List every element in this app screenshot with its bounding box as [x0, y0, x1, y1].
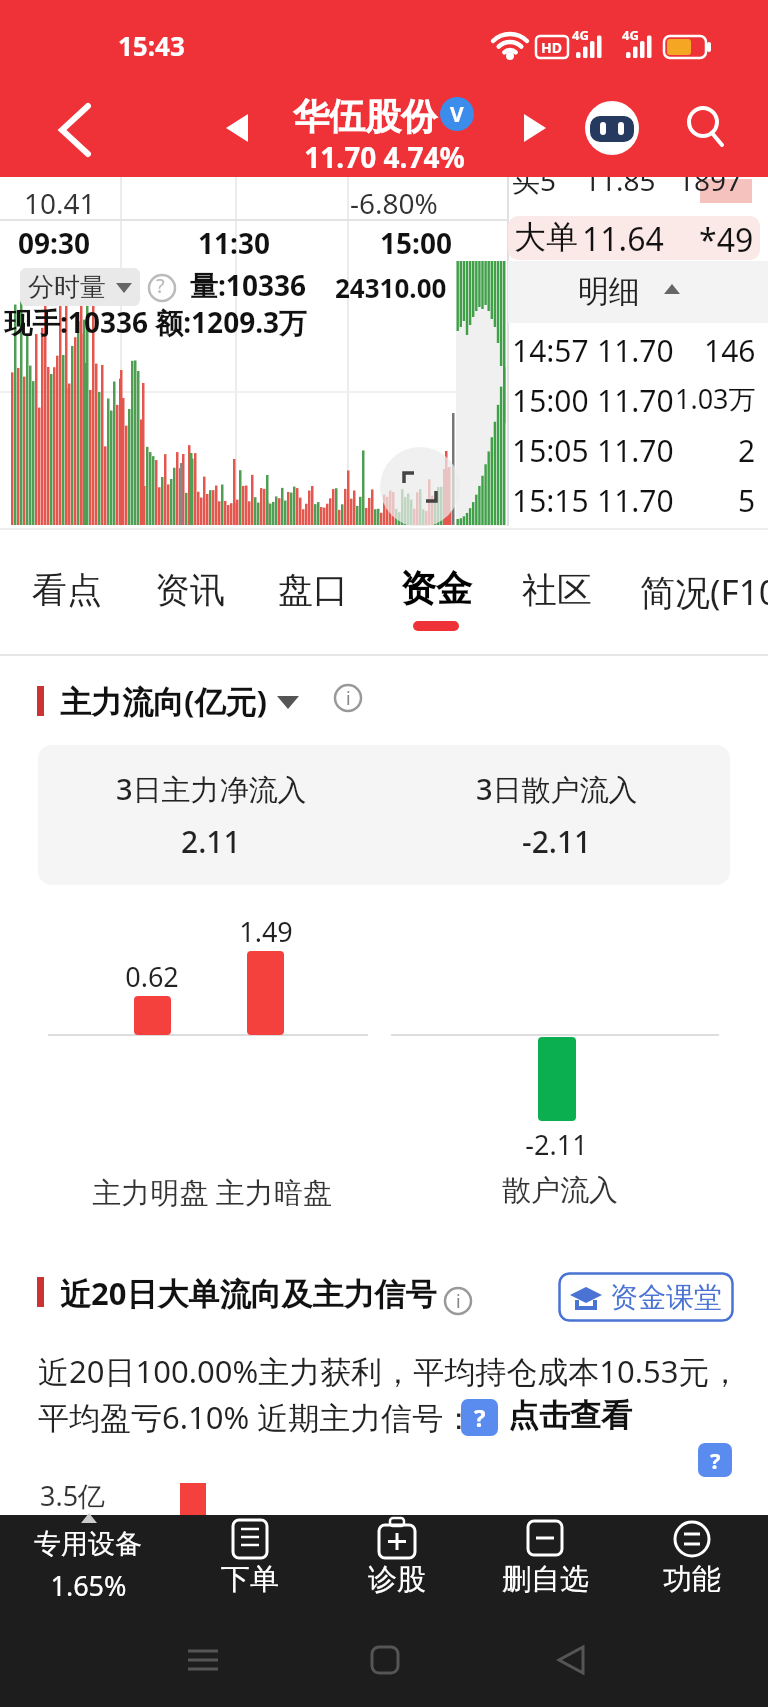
- staticText: 11.70: [597, 330, 674, 371]
- staticText: 平均盈亏6.10% 近期主力信号：: [38, 1396, 475, 1438]
- staticText: 14:57: [512, 330, 589, 371]
- staticText: 146: [704, 330, 756, 371]
- staticText: 社区: [522, 568, 592, 612]
- staticText: 近20日100.00%主力获利，平均持仓成本10.53元，: [38, 1350, 741, 1392]
- staticText: 3日散户流入: [476, 769, 638, 809]
- button[interactable]: 3日主力净流入: [38, 745, 730, 885]
- staticText: 现手:10336 额:1209.3万: [4, 303, 308, 341]
- staticText: 2: [738, 430, 756, 471]
- staticText: 09:30: [18, 224, 90, 262]
- staticText: 明细: [578, 272, 640, 311]
- button[interactable]: [337, 1515, 457, 1610]
- staticText: 删自选: [502, 1561, 589, 1598]
- staticText: 15:00: [512, 380, 589, 421]
- staticText: 15:05: [512, 430, 589, 471]
- staticText: 主力流向(亿元): [60, 680, 268, 722]
- staticText: 近20日大单流向及主力信号: [60, 1272, 437, 1314]
- staticText: 主力明盘 主力暗盘: [92, 1172, 332, 1212]
- button[interactable]: 盘口: [278, 568, 348, 612]
- staticText: 资讯: [155, 568, 225, 612]
- staticText: 15:43: [118, 28, 185, 63]
- staticText: -2.11: [525, 1126, 588, 1163]
- staticText: 11.64: [582, 217, 664, 261]
- staticText: 1.03万: [675, 380, 756, 417]
- button[interactable]: ?: [461, 1399, 498, 1436]
- button[interactable]: [485, 1515, 605, 1610]
- button[interactable]: 华伍股份: [0, 0, 144, 45]
- button[interactable]: [190, 1515, 310, 1610]
- staticText: 11.70: [597, 430, 674, 471]
- button[interactable]: 资金课堂: [558, 1272, 734, 1322]
- staticText: *49: [699, 218, 754, 262]
- staticText: 11.70: [597, 480, 674, 521]
- staticText: i: [456, 1289, 461, 1314]
- staticText: 15:15: [512, 480, 589, 521]
- staticText: 大单: [514, 217, 578, 257]
- staticText: 11:30: [198, 224, 270, 262]
- staticText: ?: [474, 1401, 486, 1434]
- staticText: 分时量: [28, 271, 106, 304]
- staticText: 3.5亿: [40, 1477, 106, 1514]
- staticText: 买5: [512, 161, 557, 199]
- staticText: 2.11: [181, 821, 241, 862]
- button[interactable]: [632, 1515, 752, 1610]
- staticText: ?: [156, 272, 165, 299]
- staticText: 24310.00: [335, 270, 447, 305]
- staticText: 看点: [32, 568, 102, 612]
- staticText: 0.62: [125, 958, 179, 995]
- staticText: 点击查看: [508, 1396, 632, 1435]
- button[interactable]: 社区: [522, 568, 592, 612]
- staticText: 1.65%: [50, 1567, 127, 1604]
- staticText: 1.49: [239, 913, 293, 950]
- button[interactable]: [508, 216, 760, 260]
- staticText: 专用设备: [34, 1527, 142, 1561]
- staticText: HD: [541, 38, 562, 57]
- staticText: 散户流入: [502, 1172, 618, 1209]
- staticText: ?: [710, 1445, 721, 1475]
- staticText: 11.70: [597, 380, 674, 421]
- staticText: 诊股: [368, 1561, 426, 1598]
- button[interactable]: [508, 261, 768, 323]
- staticText: 11.85: [584, 161, 656, 199]
- button[interactable]: 资讯: [155, 568, 225, 612]
- staticText: i: [346, 686, 351, 711]
- staticText: 4G: [572, 26, 589, 44]
- staticText: 下单: [221, 1561, 279, 1598]
- staticText: 10.41: [24, 184, 96, 222]
- staticText: 资金课堂: [610, 1280, 722, 1315]
- button[interactable]: ?: [698, 1443, 732, 1477]
- staticText: 资金: [400, 566, 472, 611]
- staticText: 3日主力净流入: [116, 769, 307, 809]
- staticText: 4G: [622, 26, 639, 44]
- staticText: 量:10336: [190, 266, 306, 304]
- staticText: 1897: [678, 161, 743, 199]
- button[interactable]: 简况(F10): [640, 568, 768, 616]
- button[interactable]: 分时量: [20, 268, 140, 306]
- staticText: V: [450, 100, 464, 129]
- staticText: 功能: [663, 1561, 721, 1598]
- staticText: -2.11: [522, 821, 592, 862]
- staticText: -6.80%: [350, 184, 438, 222]
- staticText: 11.70 4.74%: [304, 138, 465, 176]
- button[interactable]: 资金: [400, 566, 472, 611]
- button[interactable]: 专用设备: [20, 1523, 160, 1623]
- staticText: 简况(F10): [640, 568, 768, 616]
- staticText: 5: [738, 480, 756, 521]
- staticText: 盘口: [278, 568, 348, 612]
- staticText: 15:00: [380, 224, 452, 262]
- button[interactable]: 看点: [32, 568, 102, 612]
